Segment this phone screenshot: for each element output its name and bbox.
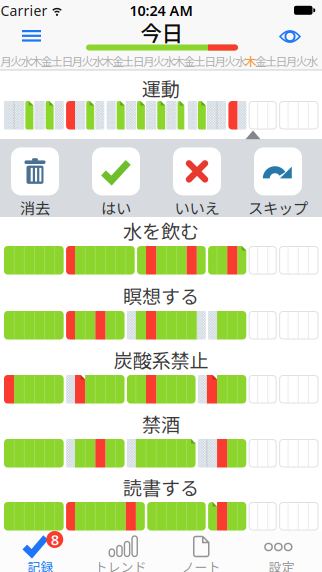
- staticText: 月: [214, 52, 226, 69]
- staticText: 禁酒: [142, 410, 180, 437]
- staticText: 月: [72, 52, 84, 69]
- staticText: ノート: [182, 557, 221, 572]
- staticText: 瞑想する: [123, 282, 199, 309]
- staticText: 火: [10, 52, 22, 69]
- staticText: 金: [112, 52, 124, 69]
- button[interactable]: 8: [0, 531, 80, 572]
- staticText: 水: [21, 52, 33, 69]
- staticText: 日: [61, 52, 73, 69]
- staticText: 土: [51, 52, 63, 69]
- staticText: 木: [245, 52, 257, 69]
- staticText: 水: [92, 52, 104, 69]
- staticText: 金: [41, 52, 53, 69]
- staticText: 土: [265, 52, 277, 69]
- button[interactable]: いいえ: [173, 147, 221, 219]
- staticText: 炭酸系禁止: [113, 346, 208, 373]
- staticText: スキップ: [248, 196, 308, 219]
- staticText: 木: [102, 52, 114, 69]
- staticText: 記録: [27, 557, 53, 572]
- staticText: 水: [235, 52, 247, 69]
- staticText: 今日: [140, 17, 182, 47]
- staticText: 水: [306, 52, 318, 69]
- staticText: 日: [276, 52, 288, 69]
- staticText: 運動: [142, 74, 180, 102]
- staticText: 月: [286, 52, 298, 69]
- button[interactable]: ノート: [161, 531, 241, 572]
- staticText: 10:24 AM: [129, 1, 192, 20]
- button[interactable]: メニュー: [9, 13, 53, 57]
- staticText: 火: [153, 52, 165, 69]
- staticText: 設定: [269, 557, 295, 572]
- button[interactable]: スキップ: [248, 147, 308, 219]
- staticText: Carrier: [0, 1, 47, 20]
- staticText: 月: [0, 52, 12, 69]
- button[interactable]: 設定: [242, 531, 322, 572]
- staticText: 金: [184, 52, 196, 69]
- staticText: 水を飲む: [123, 217, 199, 244]
- staticText: 火: [296, 52, 308, 69]
- staticText: 木: [174, 52, 186, 69]
- staticText: 土: [123, 52, 135, 69]
- button[interactable]: 消去: [11, 147, 59, 219]
- staticText: トレンド: [95, 557, 147, 572]
- staticText: 火: [82, 52, 94, 69]
- button[interactable]: はい: [92, 147, 140, 219]
- staticText: はい: [101, 196, 131, 219]
- staticText: 月: [143, 52, 155, 69]
- staticText: 水: [163, 52, 175, 69]
- staticText: 8: [51, 529, 59, 549]
- button[interactable]: トレンド: [81, 531, 161, 572]
- staticText: 日: [133, 52, 145, 69]
- staticText: 金: [255, 52, 267, 69]
- staticText: 木: [31, 52, 43, 69]
- staticText: 読書する: [123, 473, 199, 501]
- staticText: 土: [194, 52, 206, 69]
- staticText: いいえ: [174, 196, 219, 219]
- staticText: 日: [204, 52, 216, 69]
- staticText: 火: [225, 52, 237, 69]
- button[interactable]: 表示切替: [268, 14, 312, 58]
- staticText: 消去: [20, 196, 50, 219]
